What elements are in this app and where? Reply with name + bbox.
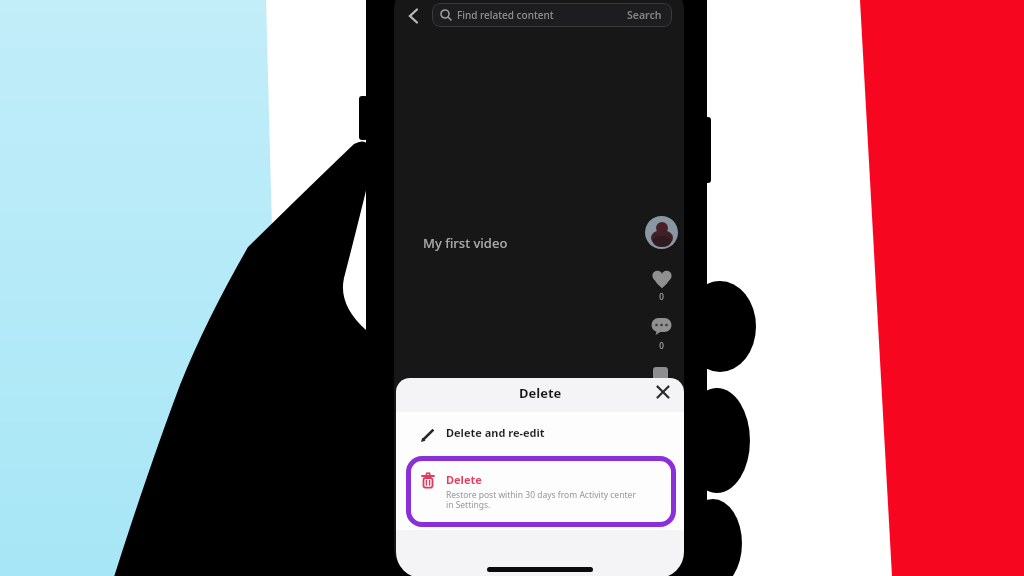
button[interactable]: Delete and re-edit — [396, 412, 684, 454]
button[interactable] — [654, 383, 672, 401]
staticText: Search — [627, 8, 662, 22]
button[interactable] — [645, 216, 678, 249]
button[interactable] — [651, 317, 672, 336]
staticText: 0 — [645, 340, 678, 351]
button[interactable]: Find related content — [432, 3, 672, 27]
staticText: 0 — [645, 291, 678, 302]
staticText: Delete — [519, 384, 562, 402]
staticText: Delete — [446, 472, 482, 487]
button[interactable]: Delete — [406, 456, 676, 527]
button[interactable] — [404, 6, 424, 26]
button[interactable] — [652, 270, 672, 289]
staticText: Restore post within 30 days from Activit… — [446, 489, 644, 511]
staticText: Delete and re-edit — [446, 425, 545, 440]
staticText: Find related content — [457, 8, 554, 22]
staticText: My first video — [423, 234, 508, 252]
